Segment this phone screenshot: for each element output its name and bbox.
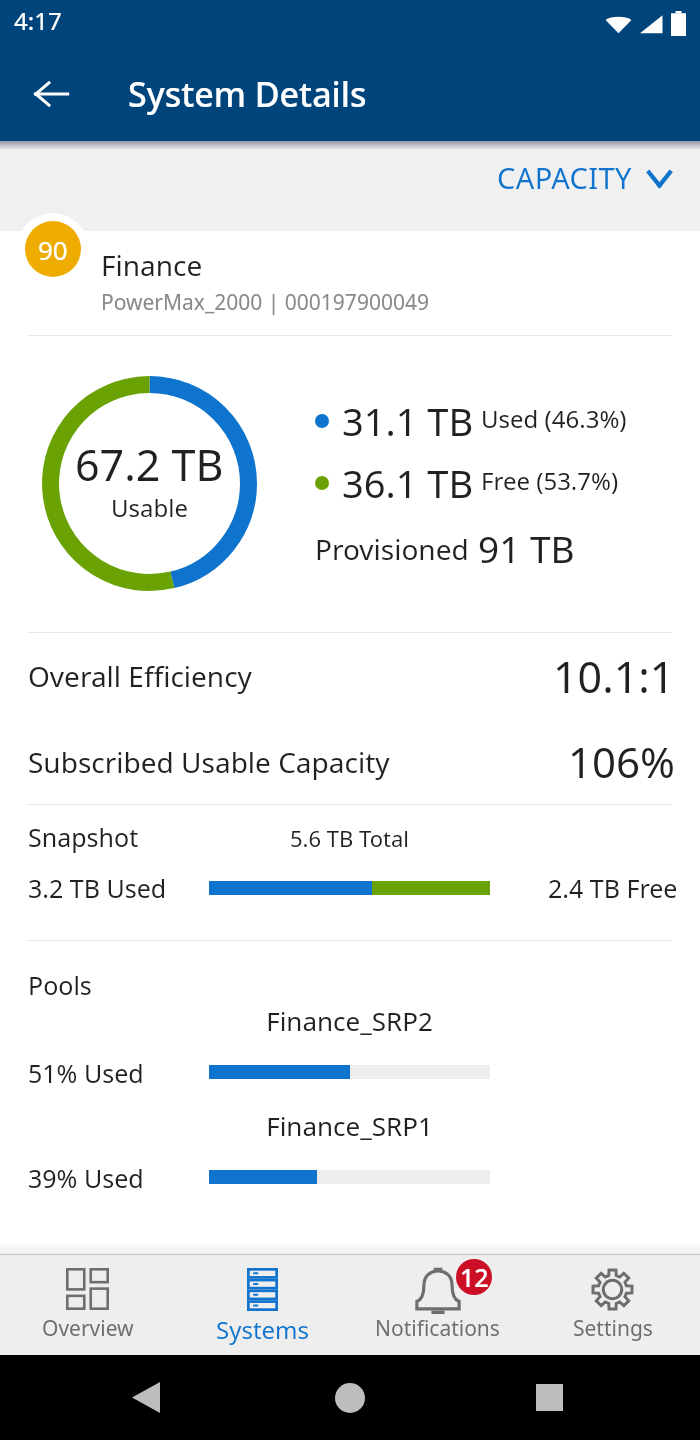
staticText: Provisioned bbox=[315, 530, 469, 568]
staticText: Pools bbox=[28, 968, 92, 1002]
staticText: 2.4 TB Free bbox=[548, 871, 678, 905]
staticText: Notifications bbox=[375, 1314, 500, 1343]
staticText: Snapshot bbox=[28, 820, 139, 854]
staticText: 106% bbox=[568, 733, 675, 790]
staticText: Usable bbox=[111, 491, 188, 524]
staticText: PowerMax_2000 | 000197900049 bbox=[101, 288, 429, 317]
button[interactable]: Systems bbox=[175, 1255, 350, 1355]
other: Back bbox=[132, 1382, 160, 1413]
staticText: Settings bbox=[573, 1314, 653, 1343]
staticText: Systems bbox=[216, 1313, 310, 1346]
button[interactable]: Back bbox=[22, 65, 80, 123]
staticText: Finance bbox=[101, 246, 203, 284]
staticText: Free (53.7%) bbox=[481, 464, 619, 497]
staticText: 36.1 TB bbox=[342, 457, 474, 509]
button[interactable]: CAPACITY bbox=[497, 158, 672, 197]
button[interactable]: Subscribed Usable Capacity bbox=[0, 719, 700, 804]
other: Home bbox=[335, 1383, 365, 1413]
staticText: Subscribed Usable Capacity bbox=[28, 743, 390, 781]
staticText: 3.2 TB Used bbox=[28, 871, 167, 905]
staticText: 12 bbox=[460, 1260, 489, 1294]
staticText: 31.1 TB bbox=[342, 395, 474, 447]
staticText: 67.2 TB bbox=[75, 435, 224, 494]
staticText: Overview bbox=[42, 1314, 134, 1343]
staticText: Finance_SRP1 bbox=[209, 1108, 490, 1143]
staticText: 91 TB bbox=[478, 523, 575, 573]
staticText: CAPACITY bbox=[497, 158, 632, 197]
button[interactable]: 12 bbox=[350, 1255, 525, 1355]
staticText: 51% Used bbox=[28, 1056, 144, 1090]
staticText: 39% Used bbox=[28, 1161, 144, 1195]
staticText: 5.6 TB Total bbox=[209, 823, 490, 853]
button[interactable]: Overall Efficiency bbox=[0, 633, 700, 719]
staticText: Used (46.3%) bbox=[481, 402, 627, 435]
staticText: Finance_SRP2 bbox=[209, 1003, 490, 1038]
staticText: System Details bbox=[128, 71, 367, 117]
staticText: 10.1:1 bbox=[553, 647, 675, 706]
staticText: 4:17 bbox=[14, 4, 62, 37]
button[interactable]: Settings bbox=[525, 1255, 700, 1355]
button[interactable]: Overview bbox=[0, 1255, 175, 1355]
staticText: Overall Efficiency bbox=[28, 657, 252, 695]
staticText: 90 bbox=[38, 232, 68, 267]
